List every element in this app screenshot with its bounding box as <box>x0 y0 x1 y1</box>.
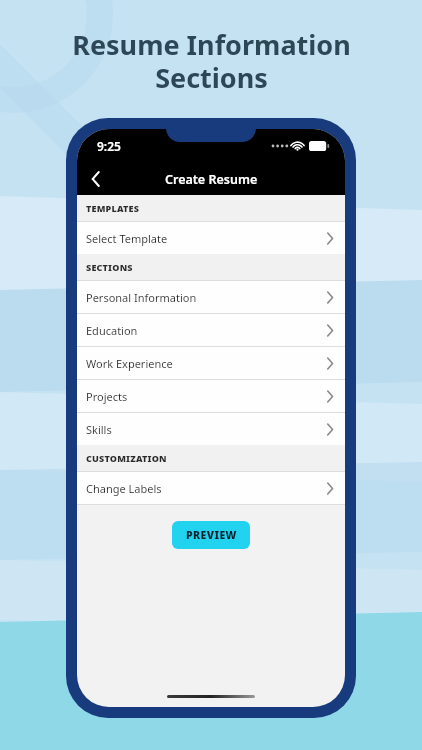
button[interactable]: Projects <box>77 380 345 412</box>
button[interactable]: Select Template <box>77 222 345 254</box>
staticText: 9:25 <box>97 138 121 154</box>
staticText: Create Resume <box>165 171 258 188</box>
staticText: Work Experience <box>86 356 173 371</box>
button[interactable]: Skills <box>77 413 345 445</box>
button[interactable]: Work Experience <box>77 347 345 379</box>
staticText: Select Template <box>86 231 168 246</box>
button[interactable]: Personal Information <box>77 281 345 313</box>
button[interactable]: Back <box>77 163 115 195</box>
button[interactable]: PREVIEW <box>172 521 250 549</box>
staticText: Skills <box>86 422 112 437</box>
staticText: Education <box>86 323 138 338</box>
staticText: CUSTOMIZATION <box>86 452 167 464</box>
staticText: Personal Information <box>86 290 197 305</box>
staticText: Change Labels <box>86 481 162 496</box>
staticText: SECTIONS <box>86 261 133 273</box>
button[interactable]: Education <box>77 314 345 346</box>
staticText: Projects <box>86 389 128 404</box>
staticText: PREVIEW <box>186 528 237 542</box>
button[interactable]: Change Labels <box>77 472 345 504</box>
staticText: Resume Information Sections <box>72 26 351 96</box>
staticText: TEMPLATES <box>86 202 140 214</box>
